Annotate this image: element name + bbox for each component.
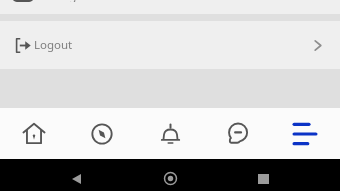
button[interactable]: Logout: [0, 21, 340, 69]
button[interactable]: Menu: [272, 108, 340, 159]
staticText: Settings: [38, 0, 82, 2]
button[interactable]: Home: [0, 108, 68, 159]
button[interactable]: Notifications: [136, 108, 204, 159]
button[interactable]: Explore: [68, 108, 136, 159]
button[interactable]: Settings: [0, 0, 340, 14]
staticText: Logout: [34, 37, 73, 53]
button[interactable]: Home: [158, 172, 182, 185]
button[interactable]: Messages: [204, 108, 272, 159]
button[interactable]: Back: [64, 172, 88, 185]
button[interactable]: Recent apps: [251, 172, 275, 185]
